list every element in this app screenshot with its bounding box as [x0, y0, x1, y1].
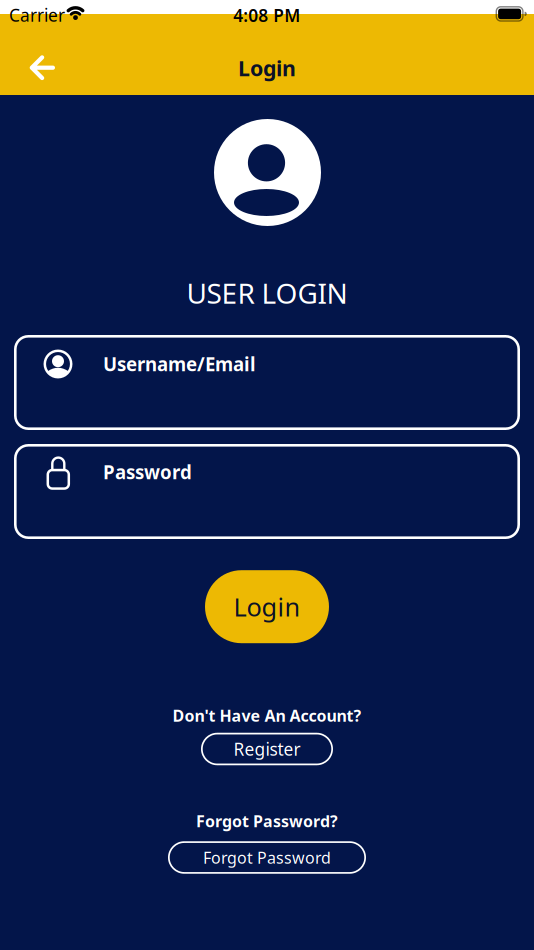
staticText: Login [233, 590, 300, 623]
staticText: Forgot Password [203, 847, 331, 868]
staticText: Login [238, 54, 296, 82]
button[interactable]: Login [205, 570, 329, 643]
staticText: Don't Have An Account? [172, 705, 361, 726]
staticText: 4:08 PM [233, 4, 300, 27]
staticText: Register [233, 737, 300, 760]
button[interactable]: Register [201, 733, 333, 765]
button[interactable]: Password [14, 444, 520, 539]
button[interactable] [20, 46, 64, 90]
button[interactable]: Forgot Password [168, 841, 366, 874]
staticText: Forgot Password? [196, 810, 338, 832]
staticText: Password [103, 460, 192, 484]
staticText: Username/Email [103, 352, 256, 376]
staticText: USER LOGIN [186, 274, 347, 312]
button[interactable]: Username/Email [14, 335, 520, 430]
staticText: Carrier [9, 3, 65, 26]
